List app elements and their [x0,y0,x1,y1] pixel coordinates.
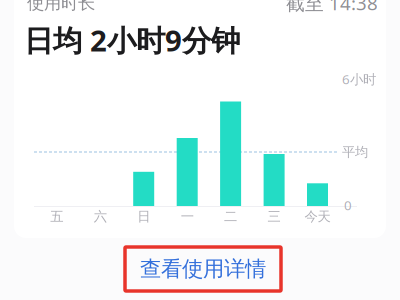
staticText: 使用时长 [27,0,95,14]
staticText: 平均 [342,144,368,160]
staticText: 五 [50,208,63,225]
staticText: 六 [94,208,107,225]
button[interactable]: 使用时长 [14,0,386,238]
staticText: 三 [268,208,281,225]
staticText: 6小时 [342,70,376,88]
staticText: 日均 2小时9分钟 [24,20,240,59]
staticText: 今天 [304,208,330,225]
staticText: 截至 14:38 [286,0,378,15]
staticText: 0 [344,196,352,214]
staticText: 一 [181,208,194,225]
staticText: 日 [137,208,150,225]
staticText: 查看使用详情 [140,256,266,282]
staticText: 二 [224,208,237,225]
button[interactable]: 查看使用详情 [128,249,278,289]
